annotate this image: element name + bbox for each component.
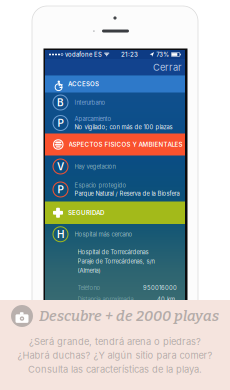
staticText: Hospital más cercano — [74, 231, 132, 238]
staticText: V — [57, 160, 64, 173]
button[interactable]: H — [45, 224, 185, 244]
staticText: B — [57, 96, 64, 109]
staticText: SEGURIDAD — [68, 209, 104, 216]
staticText: Interurbano — [74, 99, 105, 106]
staticText: Teléfono — [77, 284, 100, 291]
button[interactable]: P — [45, 177, 185, 201]
staticText: (Almería) — [77, 267, 100, 274]
staticText: 950016000 — [143, 284, 177, 291]
staticText: Descubre + de 2000 playas — [39, 307, 219, 325]
staticText: vodafone ES — [63, 51, 104, 58]
staticText: H — [57, 228, 64, 240]
button[interactable]: V — [45, 155, 185, 177]
staticText: Distancia aproximada — [77, 296, 133, 303]
staticText: 73% — [154, 51, 171, 58]
staticText: ASPECTOS FÍSICOS Y AMBIENTALES — [68, 141, 182, 148]
staticText: 21:23 — [121, 51, 138, 58]
button[interactable]: Cerrar — [147, 59, 185, 76]
staticText: 40 km. — [157, 296, 177, 303]
staticText: ¿Habrá duchas? ¿Y algún sitio para comer… — [17, 350, 212, 361]
staticText: P — [57, 117, 63, 129]
staticText: No vigilado; con más de 100 plazas — [74, 124, 172, 131]
staticText: Aparcamiento — [74, 115, 111, 122]
staticText: Paraje de Torrecárdenas, s/n — [77, 258, 154, 265]
staticText: Espacio protegido — [74, 182, 126, 189]
staticText: Hospital de Torrecárdenas — [77, 248, 148, 256]
staticText: P — [57, 183, 63, 196]
staticText: Cerrar — [153, 62, 182, 73]
button[interactable]: P — [45, 112, 185, 133]
staticText: Hay vegetación — [74, 163, 115, 170]
staticText: ¿Será grande, tendrá arena o piedras? — [29, 336, 201, 347]
staticText: ACCESOS — [68, 80, 99, 88]
staticText: Consulta las características de la playa… — [28, 364, 202, 375]
button[interactable]: B — [45, 92, 185, 112]
staticText: Parque Natural / Reserva de la Biosfera — [74, 190, 179, 197]
